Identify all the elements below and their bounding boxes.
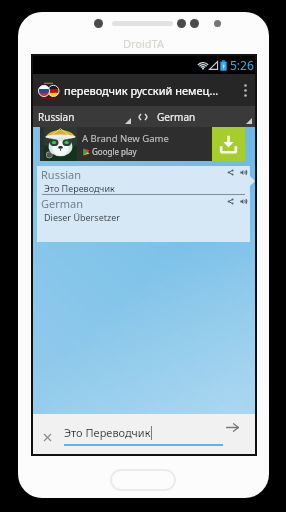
staticText: German [41, 196, 84, 211]
staticText: 5:26 [230, 57, 254, 73]
button[interactable]: Install [212, 127, 245, 161]
button[interactable]: Translate [223, 418, 242, 437]
button[interactable]: Swap languages [134, 106, 152, 127]
staticText: Russian [38, 110, 75, 124]
staticText: German [157, 110, 196, 124]
staticText: DroidTA [123, 36, 164, 51]
button[interactable]: German [152, 106, 255, 127]
staticText: Russian [41, 167, 81, 182]
button[interactable]: Clear text [41, 431, 54, 444]
button[interactable]: Share [224, 166, 237, 179]
button[interactable]: Speak [237, 195, 250, 208]
button[interactable]: Это Переводчик [64, 425, 223, 447]
button[interactable]: Share [224, 195, 237, 208]
button[interactable]: Speak [237, 166, 250, 179]
button[interactable]: German [37, 195, 250, 223]
staticText: переводчик русский немец... [64, 83, 237, 98]
button[interactable]: Russian [33, 106, 134, 127]
staticText: Это Переводчик [44, 182, 115, 194]
button[interactable]: More options [237, 74, 253, 106]
button[interactable]: Russian [37, 166, 250, 194]
button[interactable]: A Brand New Game [40, 127, 245, 161]
staticText: Google play [92, 146, 137, 157]
staticText: A Brand New Game [82, 132, 169, 145]
staticText: Это Переводчик [64, 425, 151, 440]
staticText: Dieser Übersetzer [44, 211, 120, 223]
